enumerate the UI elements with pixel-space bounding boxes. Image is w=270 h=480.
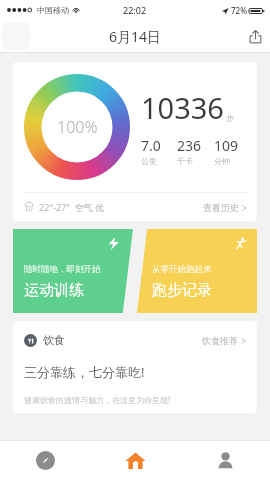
staticText: 查看历史	[203, 202, 239, 213]
staticText: 22:02	[123, 4, 147, 16]
staticText: 109	[214, 136, 239, 155]
staticText: 千卡	[177, 156, 193, 166]
staticText: 饮食推荐	[202, 335, 238, 346]
staticText: 公里	[141, 156, 157, 166]
staticText: 22°-27° 空气 优	[39, 201, 105, 213]
button[interactable]: 饮食	[13, 321, 257, 413]
button[interactable]: Home	[90, 440, 180, 480]
button[interactable]: 100%	[13, 62, 257, 221]
staticText: 饮食	[43, 333, 65, 347]
staticText: 从零开始跑起来	[152, 264, 212, 275]
button[interactable]: Profile	[180, 440, 270, 480]
staticText: 随时随地，即刻开始	[24, 264, 101, 275]
button[interactable]: Share	[240, 21, 270, 51]
staticText: 步	[226, 113, 234, 123]
staticText: 健康饮食的激情与魅力，在这里为你呈现!	[24, 394, 171, 405]
staticText: 236	[177, 136, 202, 155]
button[interactable]: 查看历史	[203, 202, 247, 213]
button[interactable]: 饮食推荐	[202, 335, 246, 346]
button[interactable]: 随时随地，即刻开始	[13, 229, 133, 313]
staticText: 跑步记录	[152, 281, 212, 300]
button[interactable]: 从零开始跑起来	[137, 229, 257, 313]
staticText: 6月14日	[109, 27, 162, 46]
staticText: 7.0	[141, 136, 161, 155]
staticText: 分钟	[214, 156, 230, 166]
staticText: 中国移动	[37, 5, 69, 15]
staticText: 三分靠练，七分靠吃!	[24, 363, 145, 381]
staticText: 100%	[57, 116, 98, 138]
staticText: 10336	[141, 88, 224, 127]
staticText: 运动训练	[24, 281, 84, 300]
button[interactable]: Discover	[0, 440, 90, 480]
staticText: 72%	[231, 5, 247, 16]
